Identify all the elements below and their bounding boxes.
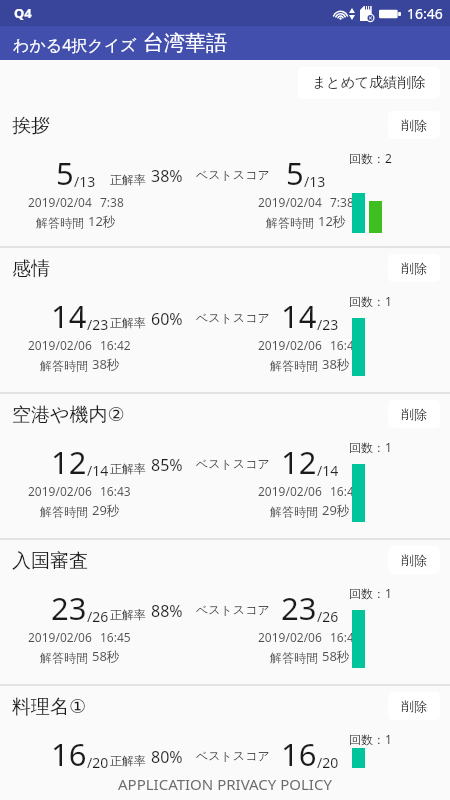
staticText: 2019/02/06 — [258, 629, 322, 645]
button[interactable]: APPLICATION PRIVACY POLICY — [0, 768, 450, 800]
staticText: 削除 — [401, 260, 427, 276]
staticText: 2019/02/04 — [258, 194, 322, 210]
button[interactable]: まとめて成績削除 — [298, 67, 440, 99]
button[interactable]: 料理名① — [0, 686, 450, 800]
staticText: 2019/02/06 — [258, 337, 322, 353]
button[interactable]: 挨拶 — [0, 105, 450, 246]
button[interactable]: 感情 — [0, 248, 450, 392]
staticText: 2019/02/06 — [28, 629, 92, 645]
staticText: 回数：2 — [349, 150, 392, 166]
staticText: 解答時間 — [40, 504, 88, 519]
staticText: 58秒 — [322, 647, 350, 665]
staticText: 解答時間 — [40, 358, 88, 373]
staticText: APPLICATION PRIVACY POLICY — [118, 774, 332, 794]
staticText: 2019/02/06 — [28, 483, 92, 499]
staticText: 解答時間 — [270, 358, 318, 373]
staticText: 5 — [56, 152, 74, 194]
staticText: 14 — [281, 295, 317, 337]
staticText: 正解率 — [110, 172, 146, 187]
staticText: わかる4択クイズ — [13, 34, 137, 56]
staticText: 解答時間 — [36, 215, 84, 230]
staticText: ベストスコア — [196, 310, 270, 325]
staticText: /23 — [317, 315, 339, 334]
staticText: /20 — [87, 753, 109, 772]
staticText: 入国審査 — [12, 549, 88, 573]
staticText: 16:47 — [100, 775, 131, 791]
staticText: 削除 — [401, 117, 427, 133]
staticText: 回数：1 — [349, 439, 392, 455]
staticText: 16 — [281, 733, 317, 775]
staticText: 38秒 — [322, 355, 350, 373]
staticText: 16:42 — [100, 337, 131, 353]
staticText: 削除 — [401, 552, 427, 568]
staticText: 38% — [151, 165, 183, 187]
staticText: 29秒 — [322, 501, 350, 519]
staticText: 2019/02/06 — [258, 483, 322, 499]
staticText: 16:43 — [330, 483, 361, 499]
staticText: 16:42 — [330, 337, 361, 353]
staticText: /26 — [317, 607, 339, 626]
staticText: /26 — [87, 607, 109, 626]
staticText: 88% — [151, 600, 183, 622]
button[interactable]: 削除 — [388, 546, 440, 574]
staticText: 12 — [51, 441, 87, 483]
staticText: 16:43 — [100, 483, 131, 499]
staticText: 回数：1 — [349, 293, 392, 309]
staticText: ベストスコア — [196, 748, 270, 763]
staticText: ベストスコア — [196, 602, 270, 617]
staticText: 12秒 — [88, 212, 116, 230]
staticText: 2019/02/04 — [28, 194, 92, 210]
staticText: 12秒 — [318, 212, 346, 230]
staticText: 16 — [51, 733, 87, 775]
staticText: 29秒 — [92, 501, 120, 519]
staticText: 16:45 — [330, 629, 361, 645]
staticText: 23 — [51, 587, 87, 629]
staticText: 16:45 — [100, 629, 131, 645]
staticText: ベストスコア — [196, 456, 270, 471]
staticText: 60% — [151, 308, 183, 330]
staticText: ベストスコア — [196, 167, 270, 182]
staticText: 38秒 — [92, 355, 120, 373]
staticText: 5 — [286, 152, 304, 194]
staticText: 台湾華語 — [143, 30, 227, 56]
staticText: /14 — [87, 461, 109, 480]
staticText: 2019/02/06 — [258, 775, 322, 791]
staticText: /14 — [317, 461, 339, 480]
button[interactable]: 削除 — [388, 400, 440, 428]
staticText: 削除 — [401, 698, 427, 714]
staticText: 正解率 — [110, 315, 146, 330]
other: SD card — [360, 6, 373, 21]
staticText: 料理名① — [12, 695, 87, 719]
staticText: 削除 — [401, 406, 427, 422]
staticText: 解答時間 — [266, 215, 314, 230]
staticText: 回数：1 — [349, 731, 392, 747]
staticText: 解答時間 — [270, 650, 318, 665]
staticText: 80% — [151, 746, 183, 768]
staticText: /20 — [317, 753, 339, 772]
button[interactable]: 削除 — [388, 254, 440, 282]
staticText: 7:38 — [330, 194, 354, 210]
staticText: /23 — [87, 315, 109, 334]
staticText: 解答時間 — [270, 504, 318, 519]
other: Battery — [379, 8, 401, 20]
staticText: 58秒 — [92, 647, 120, 665]
button[interactable]: 空港や機内② — [0, 394, 450, 538]
staticText: 23 — [281, 587, 317, 629]
staticText: 回数：1 — [349, 585, 392, 601]
staticText: 空港や機内② — [12, 403, 125, 427]
staticText: 7:38 — [100, 194, 124, 210]
staticText: 挨拶 — [12, 114, 50, 138]
button[interactable]: 入国審査 — [0, 540, 450, 684]
staticText: 2019/02/06 — [28, 337, 92, 353]
staticText: /13 — [304, 172, 326, 191]
staticText: 正解率 — [110, 607, 146, 622]
button[interactable]: 削除 — [388, 692, 440, 720]
staticText: 正解率 — [110, 753, 146, 768]
staticText: 16:47 — [330, 775, 361, 791]
staticText: 解答時間 — [40, 650, 88, 665]
button[interactable]: 削除 — [388, 111, 440, 139]
